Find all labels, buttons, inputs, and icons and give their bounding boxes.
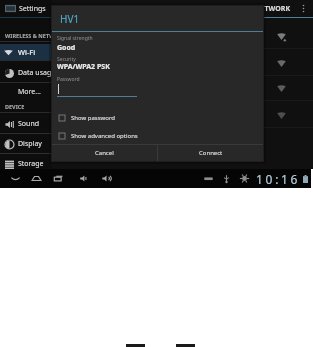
staticText: HV1	[60, 12, 80, 26]
button[interactable]: Display	[0, 135, 52, 153]
button[interactable]: Show advanced options	[59, 130, 138, 141]
staticText: Data usag	[18, 68, 52, 78]
button[interactable]: Settings	[5, 0, 52, 17]
button[interactable]	[57, 84, 137, 97]
button[interactable]: Wi-Fi network	[52, 75, 313, 101]
button[interactable]: Recent apps	[51, 169, 65, 188]
button[interactable]: Storage	[0, 155, 52, 173]
staticText: WIRELESS & NETW	[5, 32, 55, 39]
staticText: Wi-Fi	[18, 47, 36, 57]
staticText: Show advanced options	[71, 132, 138, 140]
staticText: Signal strength	[57, 35, 93, 42]
staticText: Password	[57, 76, 80, 83]
staticText: Show password	[71, 114, 115, 122]
staticText: Settings	[19, 4, 46, 14]
button[interactable]: Home	[29, 169, 43, 188]
button[interactable]: More...	[0, 83, 52, 100]
staticText: 10:16	[256, 171, 301, 187]
staticText: Sound	[18, 119, 40, 129]
button[interactable]: Wi-Fi network	[52, 50, 313, 76]
staticText: Connect	[199, 149, 223, 157]
button[interactable]: Cancel	[52, 145, 157, 161]
button[interactable]: Wi-Fi network	[52, 23, 313, 49]
button[interactable]: Wi-Fi	[0, 44, 52, 60]
button[interactable]: Back	[8, 169, 22, 188]
staticText: Cancel	[95, 149, 114, 157]
button[interactable]: More options	[297, 0, 310, 16]
staticText: Security	[57, 56, 76, 63]
button[interactable]: Data usag	[0, 64, 52, 82]
staticText: WPA/WPA2 PSK	[57, 62, 110, 72]
button[interactable]: ADD NETWORK	[238, 0, 291, 17]
staticText: Storage	[18, 159, 44, 169]
staticText: DEVICE	[5, 103, 25, 110]
button[interactable]: USB	[219, 169, 233, 188]
button[interactable]: Wi-Fi network	[52, 102, 313, 128]
button[interactable]: Volume down	[76, 169, 90, 188]
staticText: Display	[18, 139, 42, 149]
button[interactable]: Connect	[158, 145, 263, 161]
staticText: More...	[18, 87, 41, 97]
staticText: ADD NETWORK	[238, 4, 291, 14]
button[interactable]: Debug	[237, 169, 251, 188]
button[interactable]: Show password	[59, 112, 115, 123]
button[interactable]: Volume up	[99, 169, 113, 188]
button[interactable]: Sound	[0, 115, 52, 133]
button[interactable]: Battery	[300, 169, 310, 188]
staticText: Good	[57, 43, 76, 53]
button[interactable]: Screenshot	[201, 169, 215, 188]
